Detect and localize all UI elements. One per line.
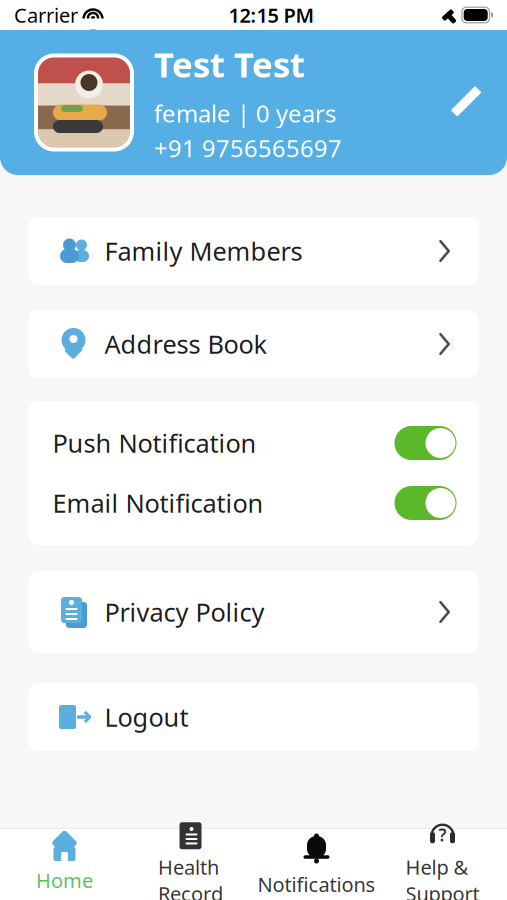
staticText: ?: [438, 823, 446, 846]
button[interactable]: Logout: [28, 683, 478, 751]
button[interactable]: Email Notification: [28, 473, 478, 533]
staticText: Help & Support: [405, 854, 479, 900]
staticText: Notifications: [257, 871, 375, 898]
button[interactable]: Address Book: [28, 310, 478, 378]
button[interactable]: Privacy Policy: [28, 571, 478, 653]
staticText: Family Members: [104, 234, 302, 268]
staticText: Privacy Policy: [104, 595, 264, 629]
button[interactable]: Notifications: [253, 828, 379, 900]
staticText: Test Test: [154, 41, 305, 87]
staticText: Carrier: [14, 2, 78, 28]
button[interactable]: Family Members: [28, 217, 478, 285]
staticText: Health Record: [158, 854, 223, 900]
staticText: Push Notification: [52, 426, 256, 460]
button[interactable]: ?: [379, 828, 505, 900]
button[interactable]: Health Record: [127, 828, 253, 900]
staticText: Email Notification: [52, 486, 263, 520]
staticText: female | 0 years: [154, 97, 336, 129]
button[interactable]: Edit profile: [437, 74, 493, 130]
staticText: 12:15 PM: [228, 2, 314, 28]
staticText: Address Book: [104, 327, 267, 361]
button[interactable]: Push Notification: [28, 413, 478, 473]
button[interactable]: Home: [1, 828, 127, 900]
staticText: Home: [36, 867, 93, 894]
staticText: Logout: [104, 700, 188, 734]
staticText: +91 9756565697: [154, 132, 342, 164]
